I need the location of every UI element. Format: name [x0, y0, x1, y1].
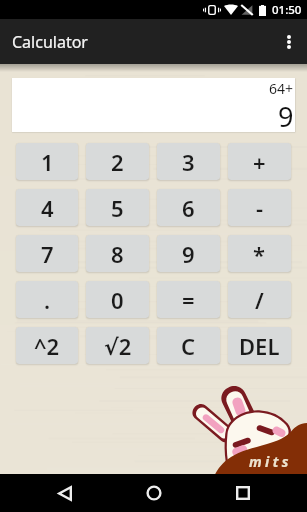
button[interactable]: 4	[16, 189, 78, 226]
button[interactable]: 5	[86, 189, 149, 226]
button[interactable]: C	[157, 327, 220, 364]
button[interactable]: √2	[86, 327, 149, 364]
button[interactable]: Recents	[198, 474, 287, 512]
staticText: 1	[41, 147, 54, 177]
staticText: 3	[182, 147, 195, 177]
staticText: *	[253, 239, 266, 269]
staticText: DEL	[239, 331, 280, 361]
staticText: 2	[111, 147, 124, 177]
staticText: .	[44, 285, 51, 315]
button[interactable]: *	[228, 235, 291, 272]
button[interactable]: More options	[271, 19, 307, 64]
button[interactable]: 1	[16, 143, 78, 180]
staticText: 4	[41, 193, 54, 223]
button[interactable]: 6	[157, 189, 220, 226]
staticText: Calculator	[12, 31, 88, 53]
staticText: 0	[111, 285, 124, 315]
button[interactable]: -	[228, 189, 291, 226]
button[interactable]: .	[16, 281, 78, 318]
staticText: √2	[104, 331, 132, 361]
button[interactable]: 0	[86, 281, 149, 318]
staticText: 9	[278, 98, 294, 132]
button[interactable]: 2	[86, 143, 149, 180]
staticText: 7	[41, 239, 54, 269]
staticText: C	[181, 331, 196, 361]
staticText: 6	[182, 193, 195, 223]
staticText: 64+	[269, 79, 294, 98]
button[interactable]: /	[228, 281, 291, 318]
button[interactable]: ^2	[16, 327, 78, 364]
button[interactable]: 9	[157, 235, 220, 272]
staticText: =	[182, 285, 195, 315]
button[interactable]: 8	[86, 235, 149, 272]
staticText: ^2	[34, 331, 60, 361]
button[interactable]: =	[157, 281, 220, 318]
button[interactable]: 3	[157, 143, 220, 180]
staticText: 5	[111, 193, 124, 223]
button[interactable]: DEL	[228, 327, 291, 364]
staticText: 9	[182, 239, 195, 269]
button[interactable]: 7	[16, 235, 78, 272]
staticText: +	[253, 147, 266, 177]
staticText: 01:50	[272, 2, 302, 18]
button[interactable]: Home	[109, 474, 198, 512]
button[interactable]: +	[228, 143, 291, 180]
staticText: mits	[249, 452, 292, 471]
staticText: /	[255, 285, 264, 315]
button[interactable]: Back	[20, 474, 109, 512]
staticText: -	[256, 193, 264, 223]
staticText: 8	[111, 239, 124, 269]
